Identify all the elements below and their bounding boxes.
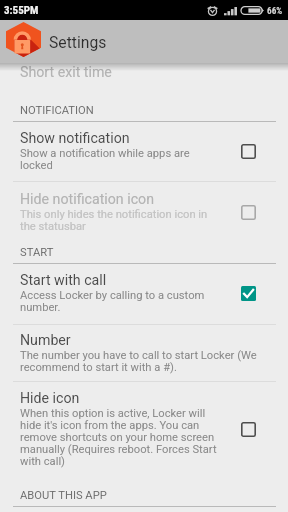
staticText: The number you have to call to start Loc… [20, 349, 268, 374]
button[interactable]: Toggle [236, 281, 260, 305]
staticText: 66% [267, 5, 283, 16]
button[interactable]: Show notification [0, 122, 288, 181]
staticText: Settings [49, 33, 107, 51]
staticText: Hide icon [20, 390, 80, 407]
staticText: Short exit time [20, 64, 112, 81]
button[interactable]: Start with call [0, 264, 288, 324]
staticText: NOTIFICATION [20, 104, 94, 117]
staticText: Show notification [20, 130, 130, 147]
staticText: When this option is active, Locker will … [20, 407, 220, 468]
staticText: Access Locker by calling to a custom num… [20, 289, 220, 314]
button[interactable]: Settings [0, 20, 288, 63]
staticText: 3:55PM [4, 4, 39, 17]
staticText: ABOUT THIS APP [20, 489, 107, 502]
button[interactable]: Toggle [236, 200, 260, 224]
staticText: Hide notification icon [20, 191, 154, 208]
button[interactable]: Toggle [236, 417, 260, 441]
staticText: This only hides the notification icon in… [20, 208, 220, 233]
button[interactable]: Number [0, 325, 288, 381]
button[interactable]: Toggle [236, 139, 260, 163]
staticText: Start with call [20, 272, 107, 289]
staticText: Number [20, 332, 71, 349]
button[interactable]: Hide icon [0, 382, 288, 484]
staticText: START [20, 246, 54, 259]
button[interactable]: Hide notification icon [0, 182, 288, 242]
staticText: Show a notification while apps are locke… [20, 147, 220, 172]
